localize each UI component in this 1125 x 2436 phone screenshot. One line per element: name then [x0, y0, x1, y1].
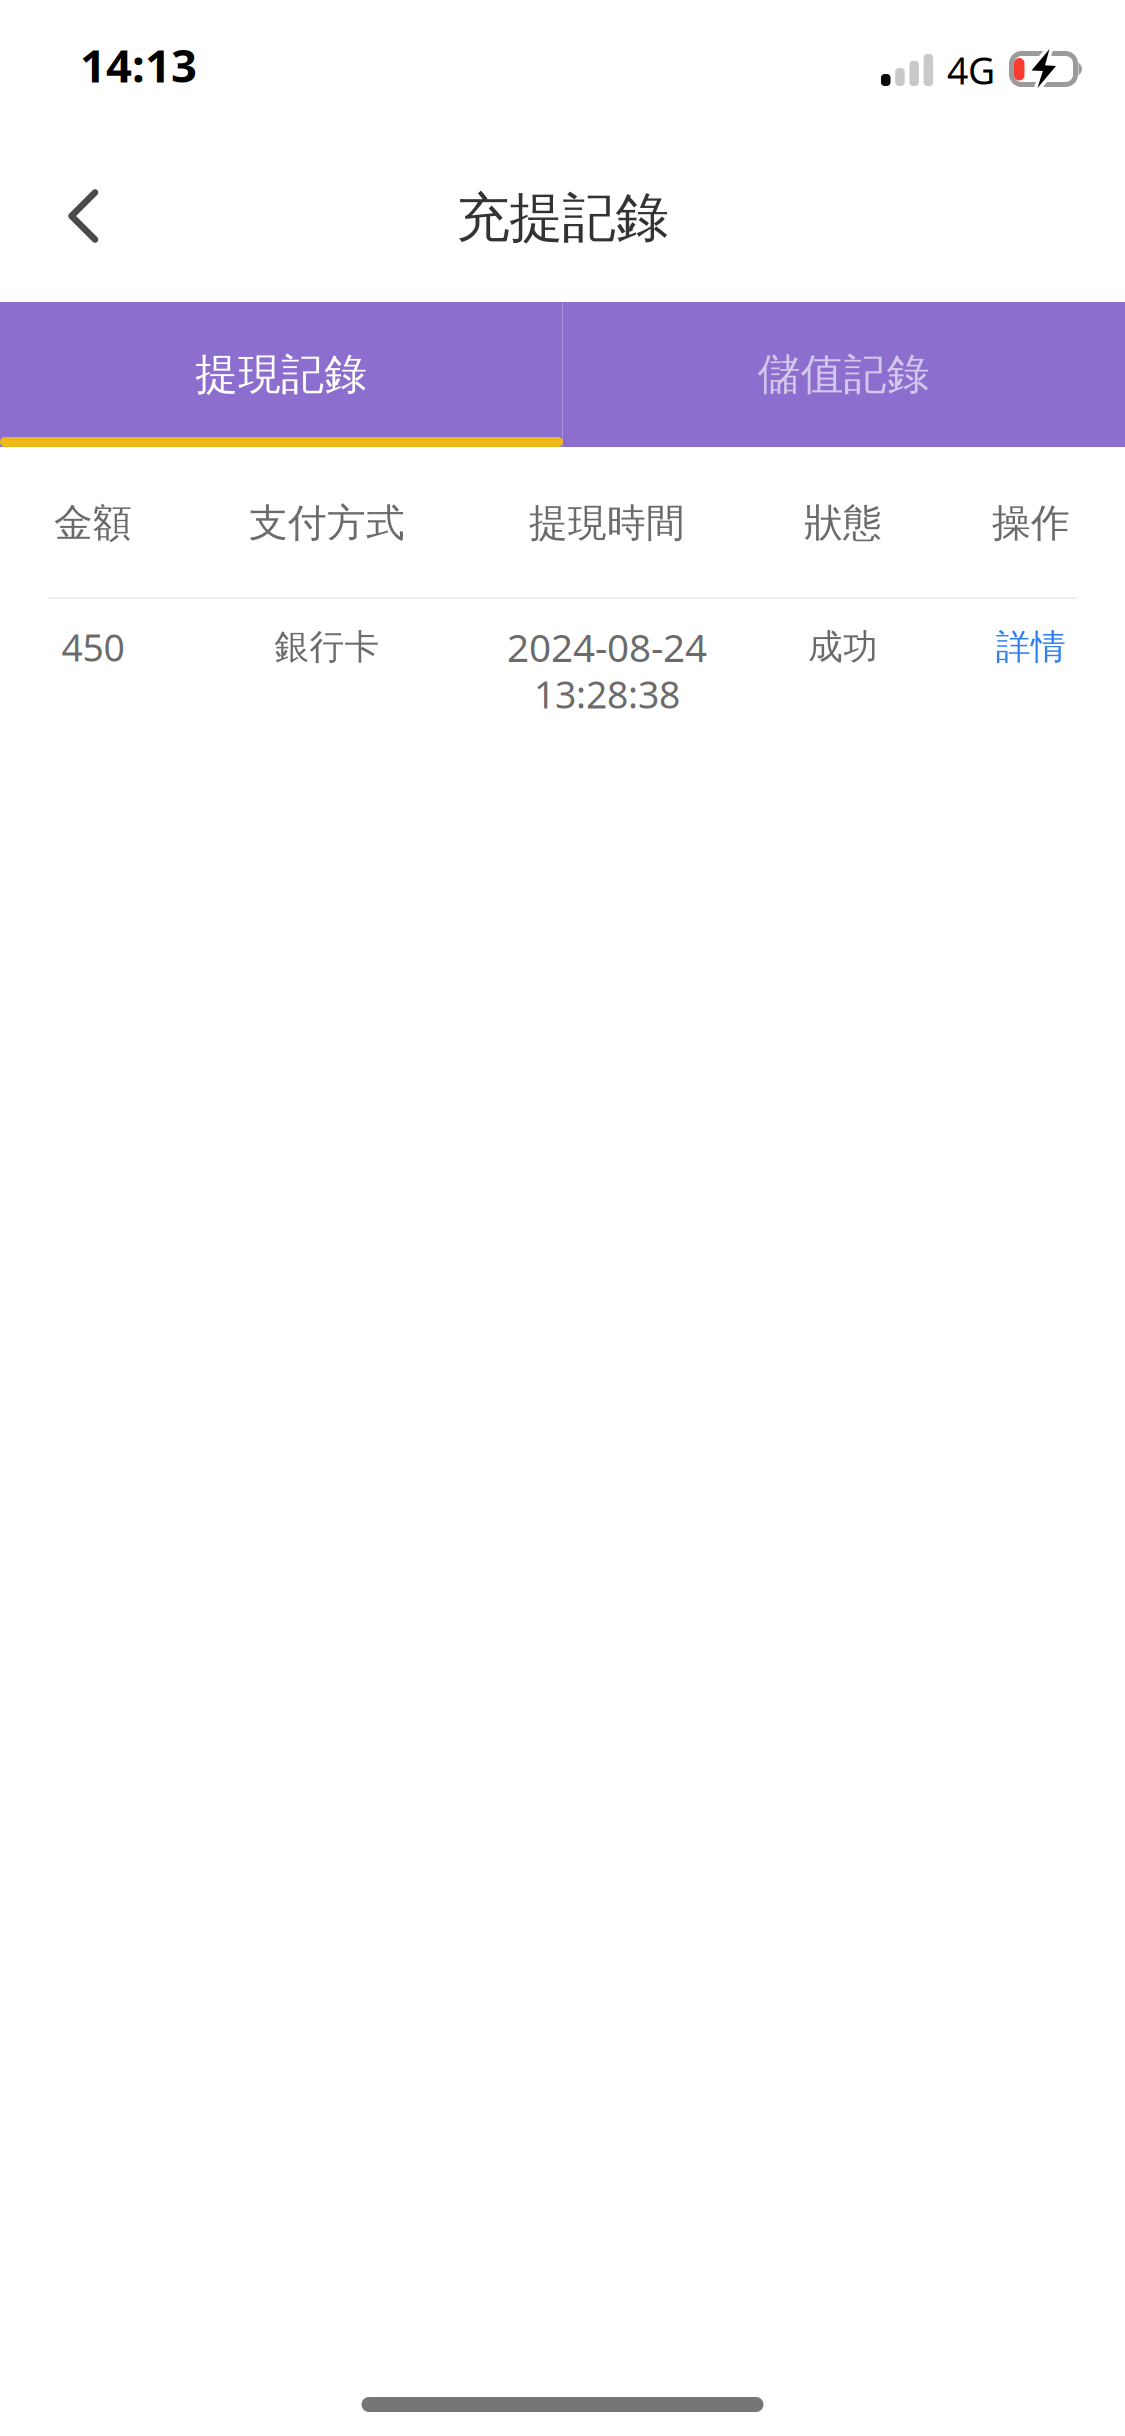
staticText: 450	[61, 622, 124, 672]
staticText: 操作	[992, 499, 1070, 547]
button[interactable]: 提現記錄	[0, 302, 562, 447]
staticText: 金額	[54, 499, 132, 547]
button[interactable]: 儲值記錄	[562, 302, 1125, 447]
button[interactable]: 詳情	[941, 611, 1121, 683]
staticText: 4G	[947, 45, 995, 95]
button[interactable]: Back	[26, 160, 138, 272]
staticText: 支付方式	[249, 499, 405, 547]
staticText: 狀態	[804, 499, 882, 547]
staticText: 13:28:38	[534, 669, 680, 719]
staticText: 提現記錄	[195, 348, 367, 401]
staticText: 詳情	[996, 626, 1066, 668]
staticText: 充提記錄	[456, 185, 668, 251]
staticText: 銀行卡	[274, 626, 379, 668]
staticText: 成功	[808, 626, 878, 668]
staticText: 2024-08-24	[507, 621, 707, 673]
staticText: 提現時間	[529, 499, 685, 547]
staticText: 儲值記錄	[758, 348, 930, 401]
staticText: 14:13	[80, 35, 197, 95]
